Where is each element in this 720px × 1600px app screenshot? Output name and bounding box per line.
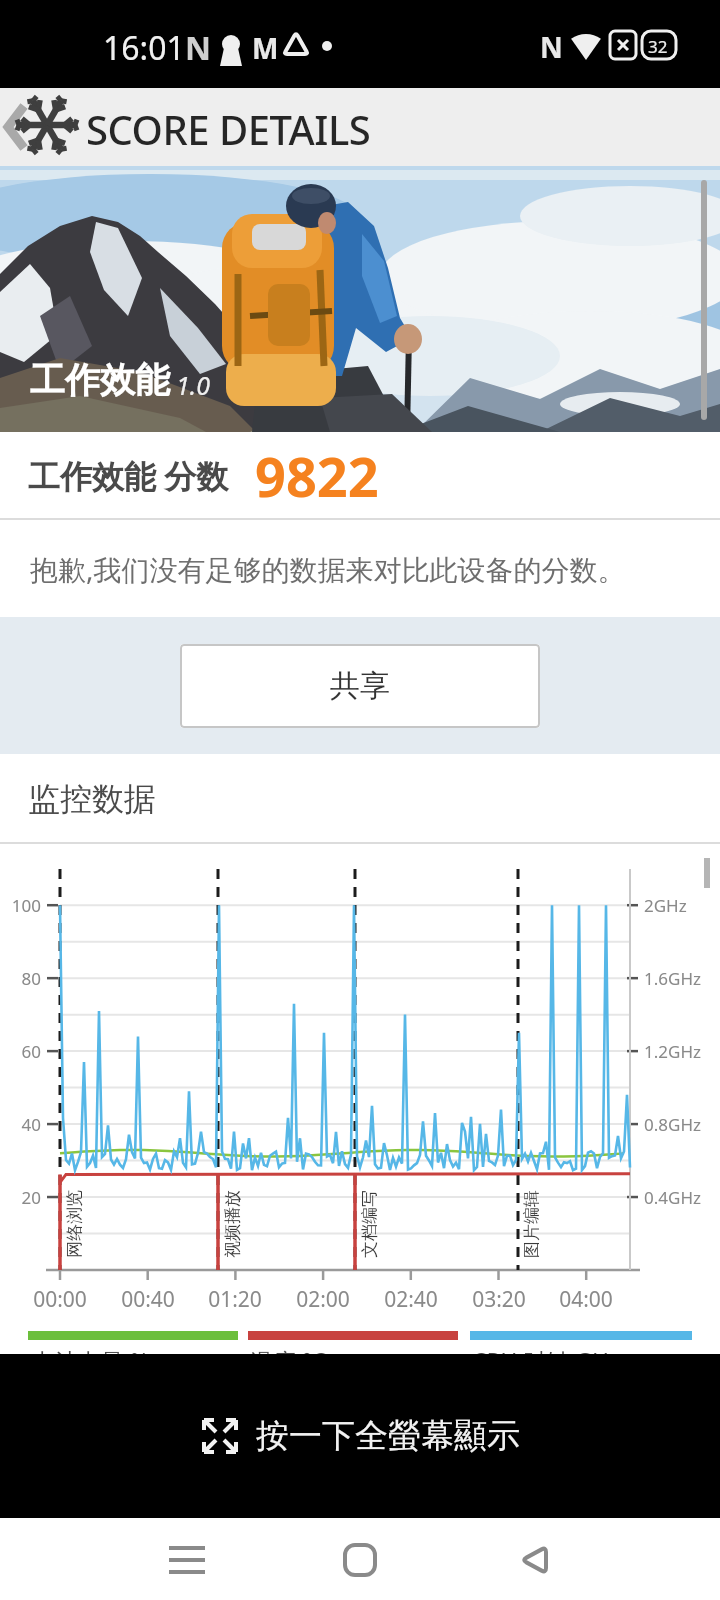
staticText: M	[252, 29, 279, 67]
staticText: 80	[0, 967, 41, 990]
staticText: 工作效能	[30, 358, 170, 402]
staticText: SCORE DETAILS	[86, 102, 371, 156]
button[interactable]	[330, 1530, 390, 1590]
staticText: 32	[648, 35, 668, 58]
staticText: 0.8GHz	[644, 1113, 701, 1136]
staticText: 02:00	[283, 1285, 363, 1314]
staticText: 2GHz	[644, 894, 687, 917]
staticText: N	[540, 28, 563, 66]
staticText: 01:20	[195, 1285, 275, 1314]
staticText: 00:40	[108, 1285, 188, 1314]
staticText: CPU 时钟 GHz	[472, 1345, 620, 1354]
staticText: 1.6GHz	[644, 967, 701, 990]
staticText: 20	[0, 1186, 41, 1209]
staticText: 00:00	[20, 1285, 100, 1314]
staticText: 1.0	[176, 368, 210, 402]
button[interactable]	[157, 1530, 217, 1590]
button[interactable]: 按一下全螢幕顯示	[0, 1354, 720, 1518]
staticText: 100	[0, 894, 41, 917]
button[interactable]: 工作效能	[0, 166, 720, 432]
staticText: 02:40	[371, 1285, 451, 1314]
staticText: 1.2GHz	[644, 1040, 701, 1063]
staticText: 电池电量 %	[32, 1345, 150, 1354]
button[interactable]	[503, 1530, 563, 1590]
staticText: 共享	[330, 667, 390, 705]
button[interactable]: 共享	[180, 644, 540, 728]
staticText: N	[185, 26, 212, 70]
staticText: 抱歉,我们没有足够的数据来对比此设备的分数。	[30, 550, 626, 588]
staticText: 60	[0, 1040, 41, 1063]
staticText: 04:00	[546, 1285, 626, 1314]
staticText: 03:20	[459, 1285, 539, 1314]
staticText: 按一下全螢幕顯示	[256, 1415, 520, 1457]
staticText: 监控数据	[28, 779, 156, 819]
staticText: 40	[0, 1113, 41, 1136]
staticText: 温度 °C	[250, 1345, 327, 1354]
staticText: 工作效能 分数	[28, 454, 229, 498]
staticText: 0.4GHz	[644, 1186, 701, 1209]
staticText: 16:01	[103, 26, 185, 70]
staticText: 9822	[255, 439, 379, 513]
